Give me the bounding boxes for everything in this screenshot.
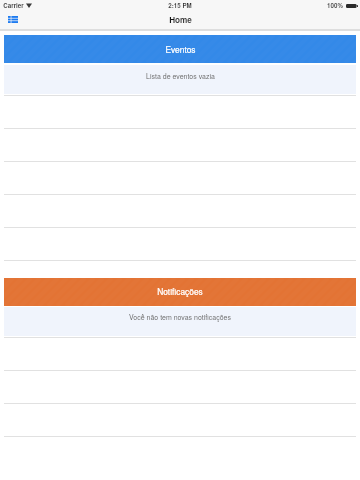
button[interactable]: Menu bbox=[5, 13, 21, 25]
staticText: Eventos bbox=[165, 43, 196, 55]
button[interactable] bbox=[0, 260, 360, 293]
button[interactable] bbox=[0, 370, 360, 403]
staticText: 2:15 PM bbox=[168, 1, 192, 10]
staticText: Carrier bbox=[3, 1, 24, 10]
button[interactable] bbox=[0, 337, 360, 370]
staticText: Você não tem novas notificações bbox=[129, 312, 231, 322]
staticText: Home bbox=[169, 14, 192, 26]
button[interactable] bbox=[0, 161, 360, 194]
button[interactable] bbox=[0, 227, 360, 260]
button[interactable]: Notificações bbox=[4, 278, 356, 306]
button[interactable]: Você não tem novas notificações bbox=[4, 307, 356, 336]
staticText: 100% bbox=[327, 1, 343, 10]
button[interactable]: Eventos bbox=[4, 35, 356, 63]
button[interactable] bbox=[0, 403, 360, 436]
button[interactable] bbox=[0, 95, 360, 128]
button[interactable]: Lista de eventos vazia bbox=[4, 65, 356, 94]
button[interactable] bbox=[0, 194, 360, 227]
button[interactable] bbox=[0, 128, 360, 161]
button[interactable] bbox=[0, 436, 360, 469]
staticText: Notificações bbox=[157, 285, 203, 297]
staticText: Lista de eventos vazia bbox=[146, 71, 215, 81]
